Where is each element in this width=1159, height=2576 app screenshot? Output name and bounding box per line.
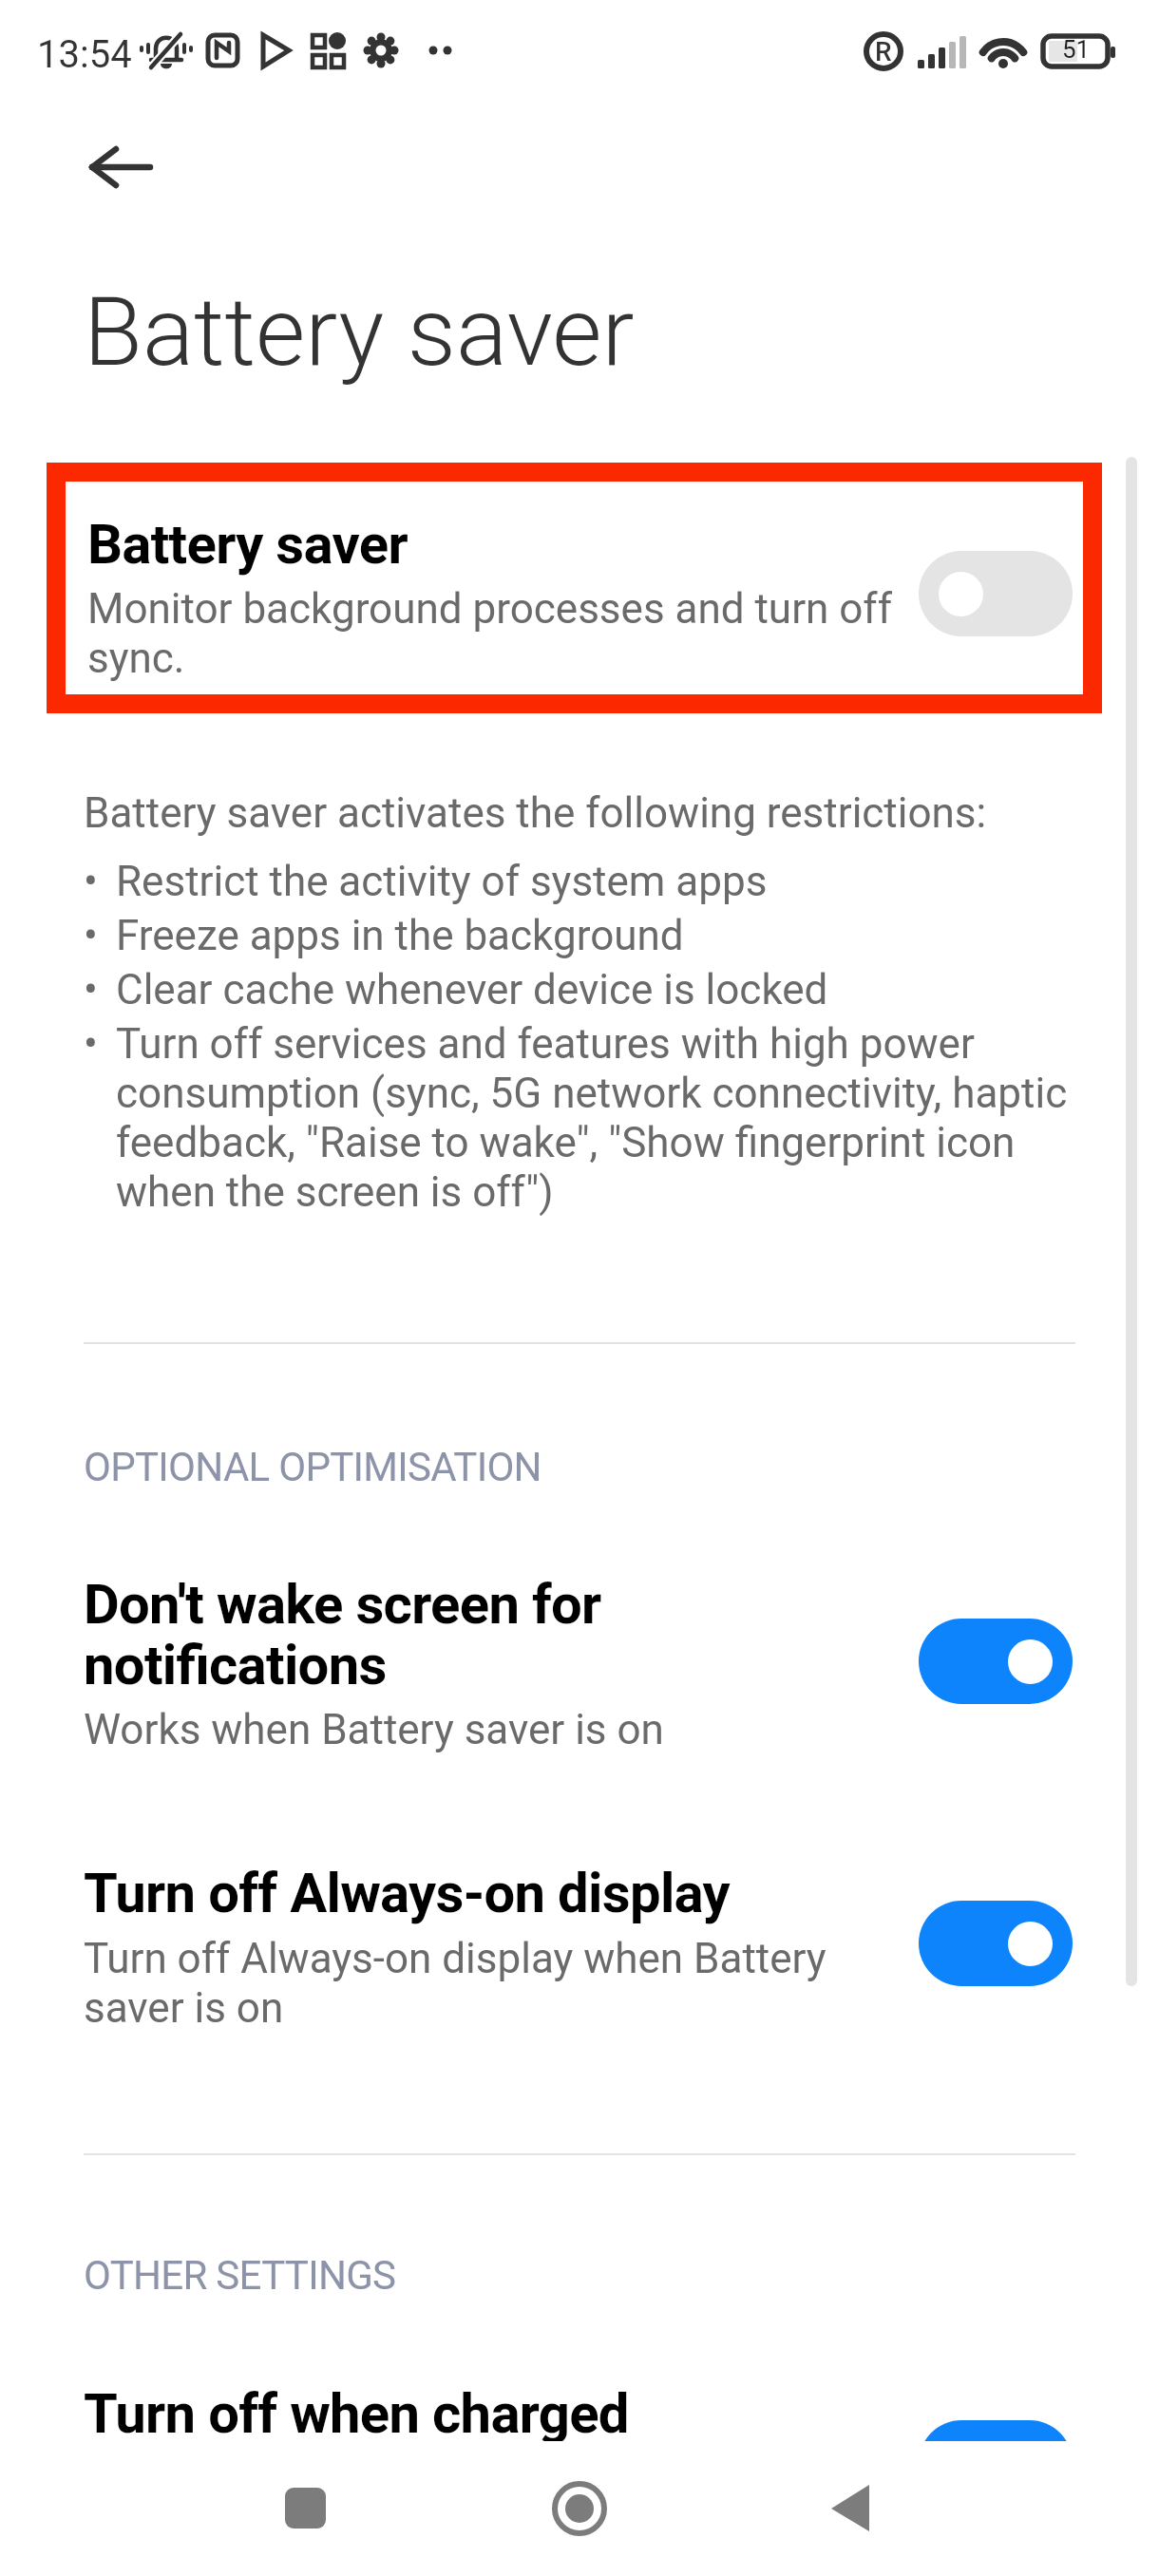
- button[interactable]: Don't wake screen for notifications: [0, 1572, 1159, 1754]
- staticText: •: [84, 857, 116, 906]
- button[interactable]: Battery saver toggle: [919, 551, 1073, 636]
- staticText: •: [84, 965, 116, 1014]
- staticText: Turn off services and features with high…: [116, 1019, 1076, 1217]
- staticText: Battery saver: [87, 512, 408, 577]
- staticText: •: [84, 1019, 116, 1069]
- button[interactable]: Turn off when charged: [0, 2356, 1159, 2441]
- staticText: Turn off Always-on display: [84, 1861, 844, 1925]
- staticText: Turn off Always-on display when Battery …: [84, 1934, 834, 2033]
- staticText: Monitor background processes and turn of…: [87, 584, 923, 683]
- button[interactable]: Back: [51, 129, 127, 205]
- button[interactable]: Don't wake screen for notifications: [919, 1619, 1073, 1704]
- staticText: 13:54: [37, 32, 132, 77]
- staticText: Freeze apps in the background: [116, 911, 684, 960]
- button[interactable]: Turn off when charged toggle: [919, 2420, 1073, 2441]
- staticText: OTHER SETTINGS: [84, 2252, 396, 2299]
- button[interactable]: Turn off Always-on display: [0, 1861, 1159, 2033]
- staticText: OPTIONAL OPTIMISATION: [84, 1444, 541, 1490]
- staticText: •: [84, 911, 116, 960]
- staticText: Turn off when charged: [84, 2381, 629, 2441]
- staticText: R: [875, 36, 892, 67]
- staticText: Works when Battery saver is on: [84, 1705, 844, 1754]
- staticText: Don't wake screen for notifications: [84, 1572, 749, 1697]
- staticText: Battery saver: [84, 275, 635, 388]
- staticText: Battery saver activates the following re…: [84, 788, 987, 838]
- button[interactable]: Battery saver: [66, 482, 1083, 694]
- staticText: 51: [1062, 35, 1091, 64]
- staticText: Restrict the activity of system apps: [116, 857, 768, 906]
- staticText: Clear cache whenever device is locked: [116, 965, 828, 1014]
- button[interactable]: Turn off Always-on display: [919, 1901, 1073, 1986]
